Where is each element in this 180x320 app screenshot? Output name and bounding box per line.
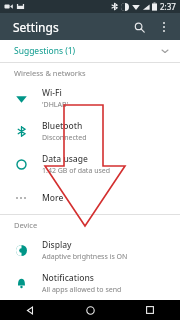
staticText: Suggestions (1) — [14, 45, 76, 57]
staticText: Bluetooth — [42, 120, 83, 132]
staticText: Data usage — [42, 153, 88, 165]
staticText: Notifications — [42, 272, 94, 284]
staticText: 'DHLAB' — [42, 100, 69, 110]
button[interactable]: Recents — [120, 300, 180, 320]
staticText: Wireless & networks — [14, 68, 86, 78]
staticText: Display — [42, 239, 72, 251]
button[interactable]: Display — [0, 234, 180, 267]
staticText: 1.42 GB of data used — [42, 166, 111, 176]
staticText: Device — [14, 220, 38, 230]
button[interactable]: Bluetooth — [0, 115, 180, 148]
staticText: Settings — [13, 19, 59, 35]
staticText: 2:37 — [160, 1, 176, 12]
staticText: All apps allowed to send — [42, 285, 122, 295]
button[interactable]: Home — [60, 300, 120, 320]
staticText: Adaptive brightness is ON — [42, 252, 128, 262]
button[interactable]: More — [0, 181, 180, 214]
button[interactable]: More options — [152, 15, 176, 39]
button[interactable]: Search — [126, 14, 152, 40]
button[interactable]: Suggestions (1) — [0, 40, 180, 62]
button[interactable]: Notifications — [0, 267, 180, 300]
button[interactable]: Back — [0, 300, 60, 320]
button[interactable]: Data usage — [0, 148, 180, 181]
staticText: Disconnected — [42, 133, 87, 143]
staticText: Wi-Fi — [42, 87, 62, 99]
staticText: More — [42, 192, 64, 204]
button[interactable]: Wi-Fi — [0, 82, 180, 115]
